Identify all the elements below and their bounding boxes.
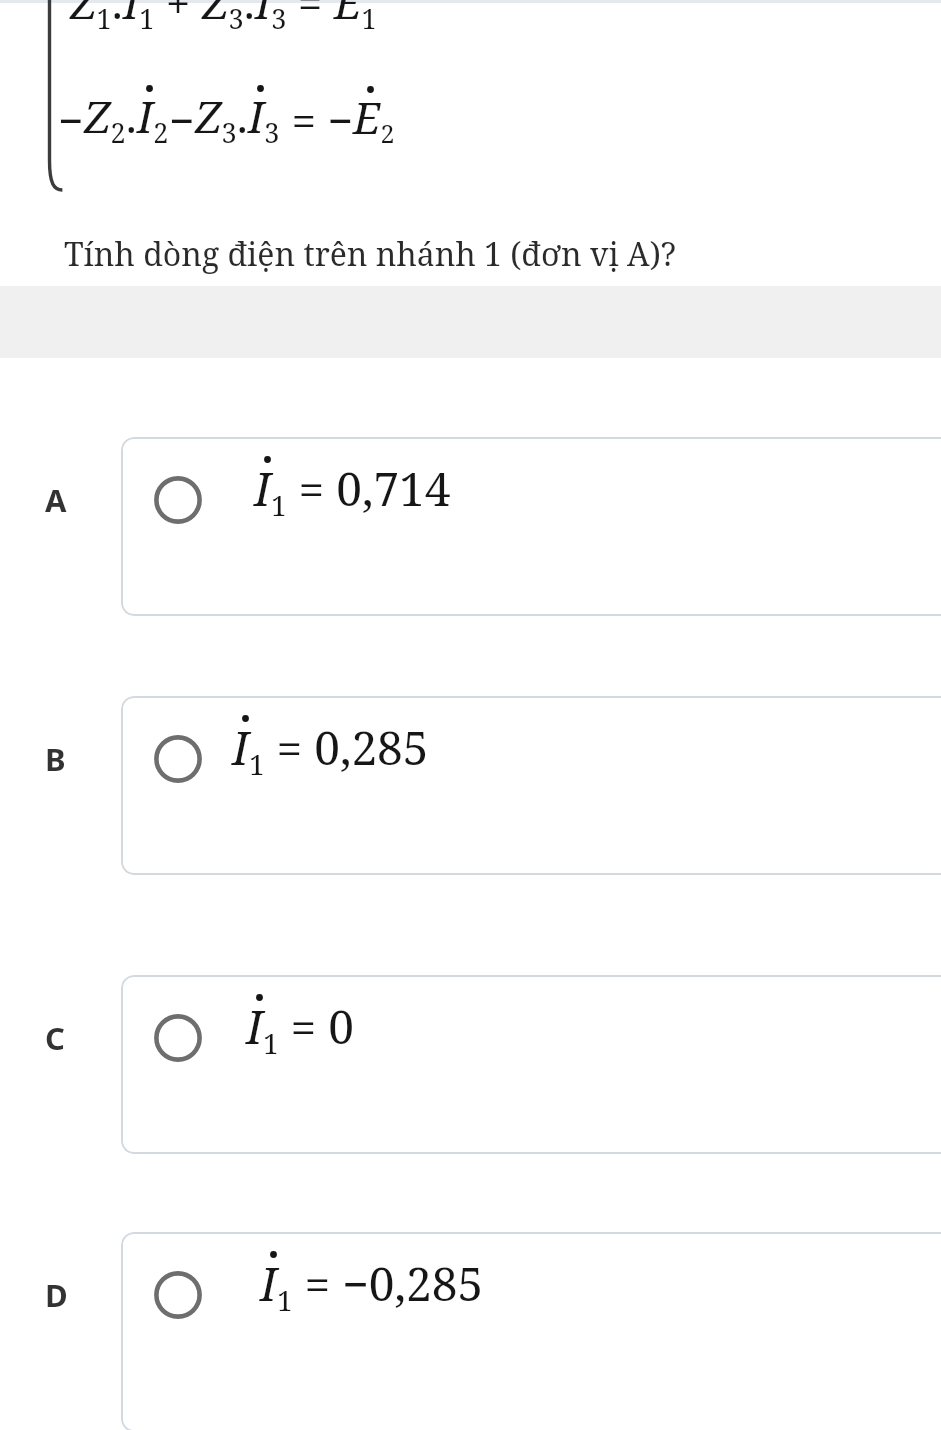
staticText: I1 = 0,285 bbox=[232, 716, 429, 783]
staticText: C bbox=[45, 1017, 65, 1059]
staticText: A bbox=[45, 479, 67, 521]
staticText: Z1. bbox=[70, 0, 123, 36]
staticText: − bbox=[169, 90, 195, 150]
staticText: Z2. bbox=[84, 86, 137, 150]
staticText: I1 = −0,285 bbox=[260, 1252, 484, 1319]
staticText: I1 = 0,714 bbox=[254, 457, 451, 524]
staticText: − bbox=[58, 90, 84, 150]
staticText: Tính dòng điện trên nhánh 1 (đơn vị A)? bbox=[64, 232, 676, 276]
staticText: D bbox=[45, 1274, 68, 1316]
staticText: I1 + bbox=[123, 0, 202, 36]
staticText: E1 bbox=[334, 0, 377, 36]
staticText: B bbox=[45, 738, 66, 780]
staticText: I2 bbox=[137, 86, 169, 150]
staticText: = − bbox=[280, 90, 353, 150]
staticText: I3 = bbox=[255, 0, 334, 36]
button[interactable]: Answer option A bbox=[121, 437, 941, 616]
button[interactable]: Answer option B bbox=[121, 696, 941, 875]
staticText: I3 bbox=[248, 86, 280, 150]
staticText: I1 = 0 bbox=[246, 995, 354, 1062]
staticText: Z3. bbox=[195, 86, 248, 150]
staticText: E2 bbox=[353, 87, 395, 150]
button[interactable]: Answer option D bbox=[121, 1232, 941, 1430]
button[interactable]: Answer option C bbox=[121, 975, 941, 1154]
staticText: Z3. bbox=[202, 0, 255, 36]
